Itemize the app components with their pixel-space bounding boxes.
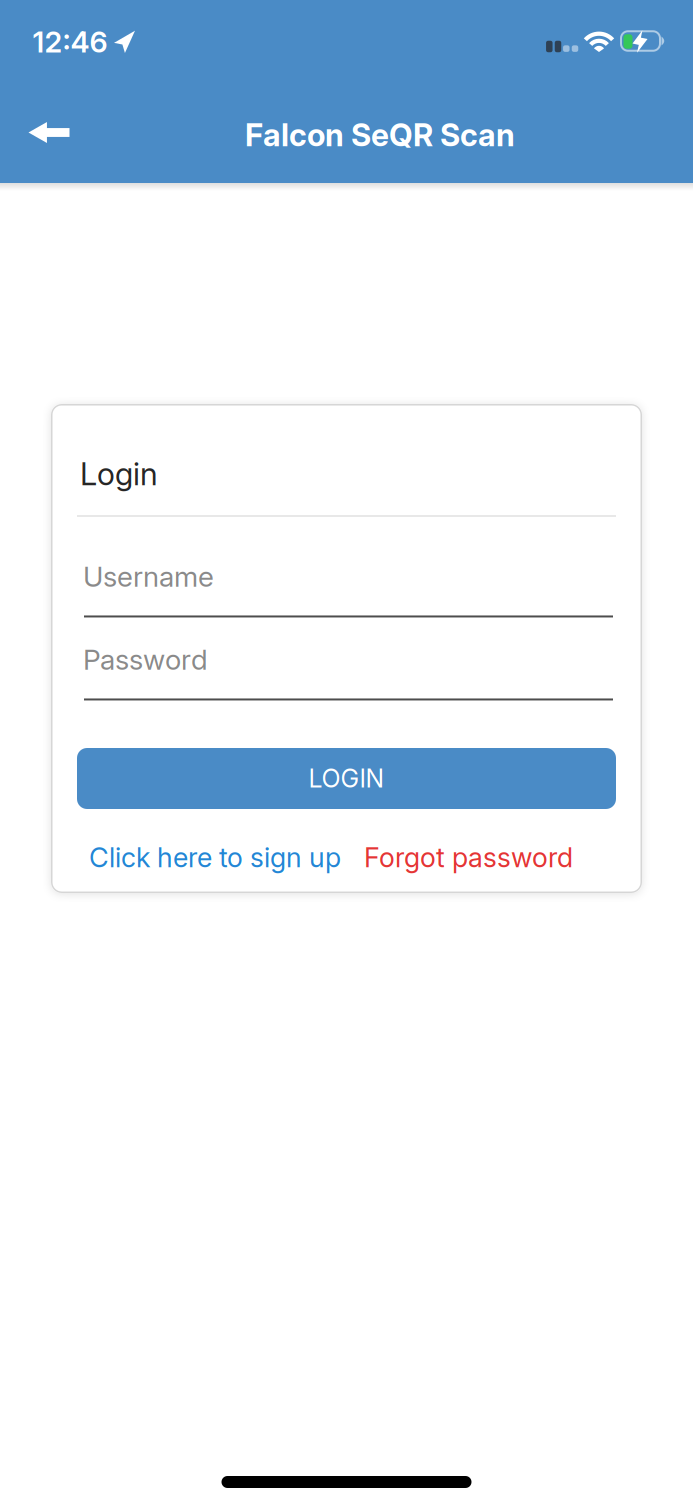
- button[interactable]: Password: [77, 643, 616, 700]
- staticText: LOGIN: [308, 764, 384, 793]
- staticText: Click here to sign up: [89, 842, 341, 873]
- button[interactable]: LOGIN: [77, 748, 616, 809]
- button[interactable]: Click here to sign up: [89, 842, 341, 873]
- button[interactable]: Forgot password: [364, 842, 573, 873]
- staticText: Username: [83, 560, 214, 593]
- staticText: Forgot password: [364, 842, 573, 873]
- button[interactable]: Back: [18, 108, 79, 157]
- staticText: Password: [83, 643, 208, 676]
- staticText: Falcon SeQR Scan: [245, 117, 515, 153]
- staticText: Login: [80, 456, 158, 492]
- button[interactable]: Username: [77, 560, 616, 617]
- staticText: 12:46: [32, 25, 107, 59]
